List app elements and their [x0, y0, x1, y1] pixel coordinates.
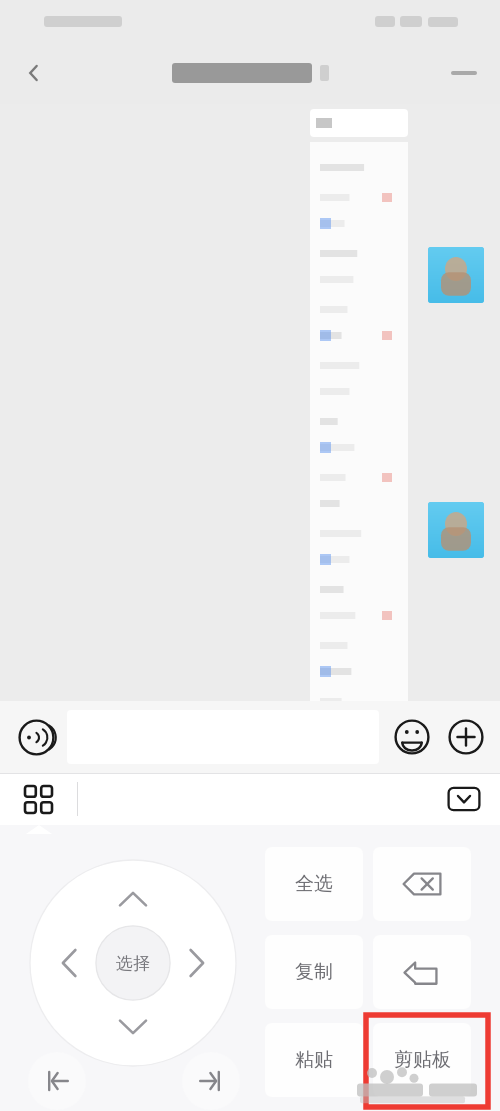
staticText: 复制	[295, 960, 333, 984]
button[interactable]	[428, 502, 484, 558]
button[interactable]	[310, 142, 408, 732]
button[interactable]: Enter	[373, 935, 471, 1009]
button[interactable]: Backspace	[373, 847, 471, 921]
button[interactable]: Emoji	[386, 711, 438, 763]
button[interactable]: Right	[162, 932, 224, 994]
button[interactable]: Left	[42, 932, 104, 994]
staticText: 选择	[116, 953, 150, 974]
staticText: 全选	[295, 872, 333, 896]
button[interactable]: Voice input	[8, 709, 64, 765]
button[interactable]: 选择	[95, 925, 171, 1001]
button[interactable]: Back	[12, 51, 56, 95]
button[interactable]: 剪贴板	[373, 1023, 471, 1097]
button[interactable]: Move to start	[28, 1052, 86, 1110]
button[interactable]: Up	[102, 874, 164, 936]
staticText: 剪贴板	[394, 1048, 451, 1072]
button[interactable]: 粘贴	[265, 1023, 363, 1097]
button[interactable]: Down	[102, 990, 164, 1052]
button[interactable]: Hide panel	[442, 777, 486, 821]
staticText: 粘贴	[295, 1048, 333, 1072]
button[interactable]: 全选	[265, 847, 363, 921]
button[interactable]: Keyboard tools	[16, 777, 60, 821]
button[interactable]: 复制	[265, 935, 363, 1009]
button[interactable]: Move to end	[182, 1052, 240, 1110]
button[interactable]	[310, 109, 408, 137]
button[interactable]: More	[440, 711, 492, 763]
button[interactable]: More options	[442, 51, 486, 95]
button[interactable]	[428, 247, 484, 303]
